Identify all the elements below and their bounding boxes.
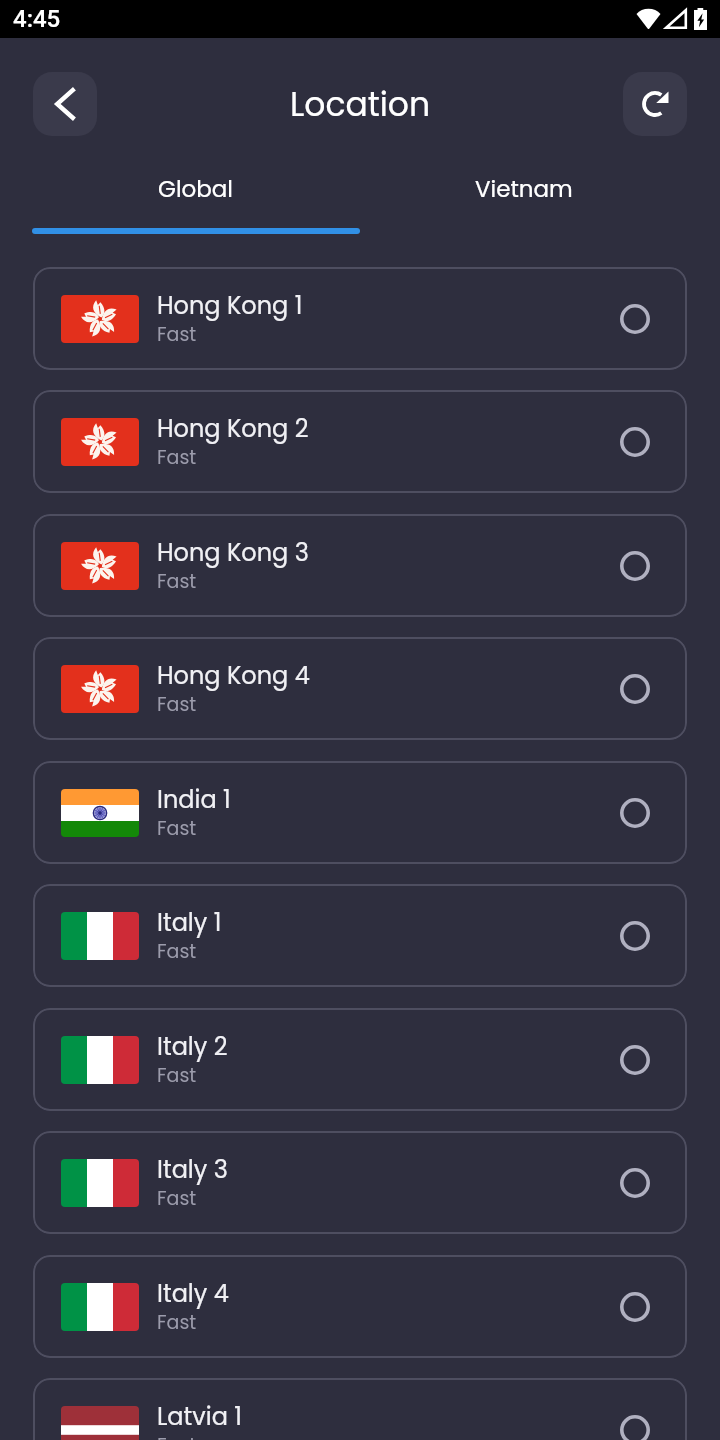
staticText: Location <box>290 81 431 127</box>
button[interactable]: Vietnam <box>360 161 688 217</box>
staticText: 4:45 <box>13 5 61 33</box>
button[interactable]: Italy 2 <box>33 1008 687 1111</box>
staticText: Italy 3 <box>157 1153 228 1187</box>
staticText: Fast <box>157 1432 197 1440</box>
staticText: Vietnam <box>475 173 573 205</box>
staticText: Hong Kong 2 <box>157 412 309 446</box>
button[interactable]: Global <box>32 161 360 217</box>
button[interactable]: Italy 4 <box>33 1255 687 1358</box>
button[interactable]: Hong Kong 2 <box>33 390 687 493</box>
staticText: Fast <box>157 938 197 965</box>
staticText: Fast <box>157 444 197 471</box>
staticText: Hong Kong 4 <box>157 659 310 693</box>
staticText: Fast <box>157 1062 197 1089</box>
button[interactable]: Hong Kong 1 <box>33 267 687 370</box>
staticText: Hong Kong 1 <box>157 289 303 323</box>
button[interactable]: Latvia 1 <box>33 1378 687 1440</box>
staticText: Fast <box>157 1185 197 1212</box>
button[interactable]: Italy 1 <box>33 884 687 987</box>
staticText: India 1 <box>157 783 231 817</box>
staticText: Latvia 1 <box>157 1400 243 1434</box>
staticText: Fast <box>157 691 197 718</box>
staticText: Italy 1 <box>157 906 222 940</box>
staticText: Global <box>158 173 234 205</box>
button[interactable]: Back <box>33 72 97 136</box>
staticText: Italy 4 <box>157 1277 229 1311</box>
button[interactable]: Hong Kong 3 <box>33 514 687 617</box>
button[interactable]: Italy 3 <box>33 1131 687 1234</box>
staticText: Fast <box>157 815 197 842</box>
button[interactable]: Hong Kong 4 <box>33 637 687 740</box>
staticText: Fast <box>157 568 197 595</box>
button[interactable]: India 1 <box>33 761 687 864</box>
staticText: Hong Kong 3 <box>157 536 309 570</box>
staticText: Fast <box>157 1309 197 1336</box>
button[interactable]: Refresh <box>623 72 687 136</box>
staticText: Italy 2 <box>157 1030 228 1064</box>
staticText: Fast <box>157 321 197 348</box>
